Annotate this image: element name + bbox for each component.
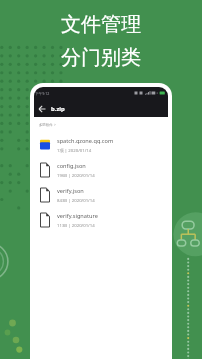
button[interactable]: verify.json xyxy=(34,182,168,207)
staticText: 196B | 2020/01/14 xyxy=(57,172,95,178)
button[interactable]: Share xyxy=(176,218,202,248)
staticText: 113B | 2020/01/14 xyxy=(57,222,95,228)
staticText: 文件管理 xyxy=(61,12,141,37)
staticText: 下午9:12 xyxy=(35,91,50,96)
staticText: verify.signature xyxy=(57,212,98,220)
button[interactable]: 多阶段件 xyxy=(39,123,56,127)
staticText: verify.json xyxy=(57,187,84,195)
button[interactable]: spatch.qzone.qq.com xyxy=(34,132,168,157)
staticText: spatch.qzone.qq.com xyxy=(57,137,114,145)
staticText: 多阶段件 xyxy=(39,123,53,127)
staticText: 843B | 2020/01/14 xyxy=(57,197,95,203)
button[interactable]: Back xyxy=(37,104,47,114)
staticText: 1项 | 2020/01/14 xyxy=(57,147,92,153)
staticText: 分门别类 xyxy=(61,45,141,70)
staticText: b.zip xyxy=(51,105,65,113)
staticText: > xyxy=(54,123,56,127)
staticText: config.json xyxy=(57,162,86,170)
button[interactable]: config.json xyxy=(34,157,168,182)
button[interactable]: verify.signature xyxy=(34,207,168,232)
